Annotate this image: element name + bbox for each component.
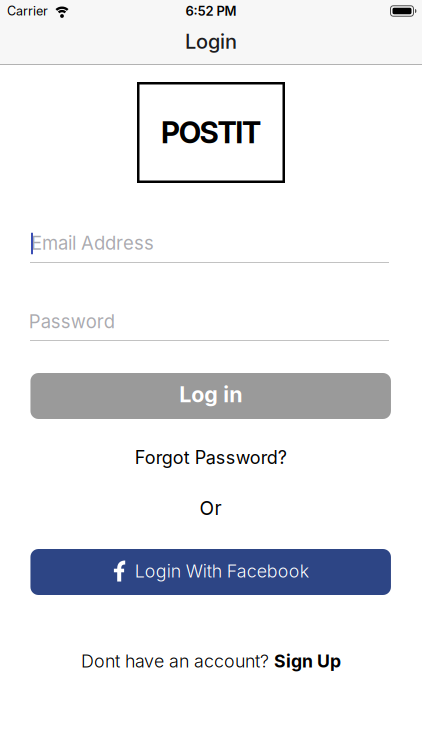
staticText: POSTIT [161, 115, 261, 150]
staticText: 6:52 PM [185, 3, 236, 19]
button[interactable]: Sign Up [274, 650, 341, 672]
staticText: Sign Up [274, 650, 341, 672]
staticText: Carrier [7, 3, 48, 19]
staticText: Login [185, 29, 237, 54]
staticText: Log in [179, 381, 242, 407]
button[interactable]: Forgot Password? [135, 447, 287, 468]
staticText: Password [29, 310, 115, 333]
staticText: Login With Facebook [135, 560, 309, 582]
staticText: Or [199, 496, 221, 519]
button[interactable]: Log in [30, 373, 391, 419]
staticText: Dont have an account? [81, 650, 269, 672]
staticText: Forgot Password? [135, 447, 287, 468]
button[interactable]: Login With Facebook [30, 549, 391, 595]
staticText: Email Address [31, 232, 154, 254]
